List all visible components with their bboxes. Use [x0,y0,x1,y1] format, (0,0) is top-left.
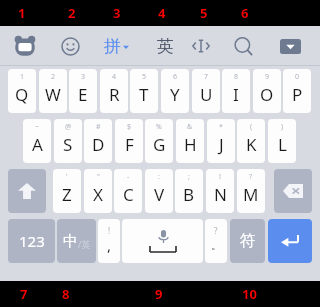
staticText: * [219,122,223,132]
button[interactable]: 符 [230,219,265,263]
staticText: 2 [68,4,76,22]
button[interactable]: 4 [100,69,128,113]
button[interactable]: 9 [253,69,281,113]
staticText: : [158,172,160,182]
button[interactable]: Search [230,33,256,59]
staticText: K [246,133,257,156]
button[interactable]: 7 [192,69,220,113]
button[interactable]: ! [206,169,234,213]
staticText: , [107,235,112,255]
button[interactable]: % [145,119,173,163]
button[interactable]: & [176,119,204,163]
button[interactable]: ? [237,169,265,213]
staticText: A [32,133,43,156]
button[interactable]: 3 [69,69,97,113]
button[interactable]: ( [237,119,265,163]
staticText: 拼 [104,36,121,57]
staticText: U [200,83,213,106]
button[interactable]: 0 [283,69,311,113]
button[interactable]: 6 [161,69,189,113]
button[interactable]: 5 [130,69,158,113]
staticText: 1 [20,72,25,82]
staticText: S [63,133,73,156]
staticText: Z [62,183,72,206]
staticText: C [123,183,134,206]
staticText: $ [127,122,132,132]
staticText: & [187,122,193,132]
staticText: ? [214,225,218,236]
staticText: I [233,83,239,106]
button[interactable]: 拼 [104,36,129,57]
staticText: 8 [62,285,70,303]
staticText: 英 [157,36,174,57]
staticText: 3 [113,4,121,22]
button[interactable]: Emoji [57,33,83,59]
staticText: 7 [20,285,28,303]
staticText: 1 [18,4,26,22]
staticText: ~ [35,122,40,132]
button[interactable]: Baidu input [13,34,37,58]
staticText: ! [219,172,221,182]
staticText: ( [250,122,253,132]
staticText: - [127,172,130,182]
button[interactable]: 1 [8,69,36,113]
button[interactable]: Hide keyboard [277,33,303,59]
staticText: 符 [240,231,256,251]
staticText: D [92,133,105,156]
staticText: N [214,183,227,206]
button[interactable]: ' [53,169,81,213]
staticText: F [125,133,134,156]
staticText: % [156,122,162,132]
button[interactable]: " [84,169,112,213]
staticText: " [97,172,100,182]
button[interactable]: Backspace [274,169,312,213]
staticText: V [154,183,165,206]
staticText: O [260,83,274,106]
staticText: ! [108,225,111,236]
button[interactable]: ) [268,119,296,163]
staticText: L [278,133,287,156]
staticText: J [219,133,224,156]
staticText: ; [188,172,190,182]
button[interactable]: ? [205,219,227,263]
staticText: 3 [81,72,86,82]
button[interactable]: 英 [152,33,178,59]
staticText: 6 [241,4,249,22]
staticText: E [78,83,88,106]
button[interactable]: $ [115,119,143,163]
button[interactable]: - [114,169,142,213]
button[interactable]: ; [175,169,203,213]
button[interactable]: 8 [222,69,250,113]
button[interactable]: Shift [8,169,46,213]
staticText: # [96,122,101,132]
staticText: 4 [158,4,166,22]
button[interactable]: 123 [8,219,55,263]
staticText: 10 [242,285,257,303]
button[interactable]: ! [98,219,120,263]
button[interactable]: 中 [57,219,96,263]
staticText: W [45,83,61,106]
button[interactable]: Space [122,219,203,263]
staticText: @ [65,122,72,132]
button[interactable]: @ [54,119,82,163]
button[interactable]: 2 [39,69,67,113]
staticText: B [183,183,195,206]
staticText: 7 [204,72,209,82]
staticText: 9 [265,72,270,82]
staticText: Q [15,83,29,106]
staticText: ? [249,172,253,182]
button[interactable]: ~ [23,119,51,163]
staticText: X [93,183,103,206]
button[interactable]: : [145,169,173,213]
staticText: 2 [51,72,56,82]
staticText: /英 [78,238,91,250]
staticText: 123 [19,231,45,251]
button[interactable]: # [84,119,112,163]
staticText: R [109,83,120,106]
button[interactable]: * [207,119,235,163]
staticText: ) [281,122,284,132]
button[interactable]: Move cursor [188,33,214,59]
staticText: 9 [155,285,163,303]
staticText: ' [66,172,68,182]
button[interactable]: Enter [268,219,312,263]
